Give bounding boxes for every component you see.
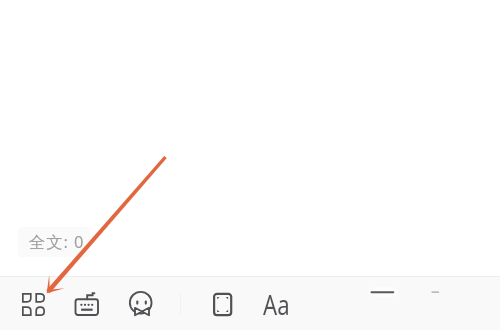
button[interactable]: Full screen: [212, 292, 233, 317]
button[interactable]: More tools: [22, 293, 45, 316]
button[interactable]: Voice keyboard: [74, 292, 102, 315]
staticText: 全文: 0: [29, 230, 85, 253]
button[interactable]: Stickers: [128, 290, 155, 317]
button[interactable]: Aa: [263, 286, 290, 323]
staticText: Aa: [263, 286, 290, 323]
